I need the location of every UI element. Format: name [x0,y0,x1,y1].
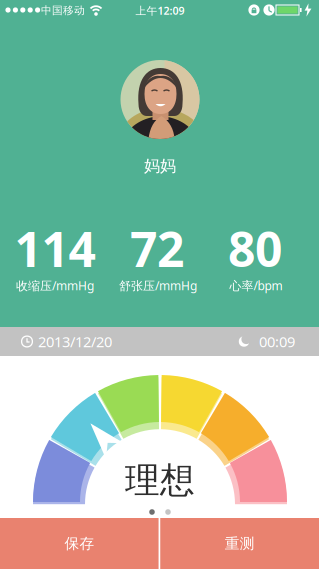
staticText: 114 [14,217,95,280]
staticText: 保存 [64,534,94,552]
staticText: 80 [228,217,282,280]
staticText: 理想 [125,459,195,502]
staticText: 舒张压/mmHg [119,277,197,293]
staticText: 中国移动 [41,4,85,17]
staticText: 72 [130,217,184,280]
staticText: 心率/bpm [229,277,282,293]
staticText: 2013/12/20 [38,332,112,351]
button[interactable]: 重测 [160,518,319,569]
staticText: 妈妈 [144,156,176,176]
button[interactable]: 保存 [0,518,159,569]
staticText: 00:09 [259,332,295,351]
staticText: 重测 [225,534,255,552]
staticText: 上午12:09 [135,3,184,18]
staticText: 收缩压/mmHg [16,277,94,293]
button[interactable]: 用户头像 [120,60,199,139]
